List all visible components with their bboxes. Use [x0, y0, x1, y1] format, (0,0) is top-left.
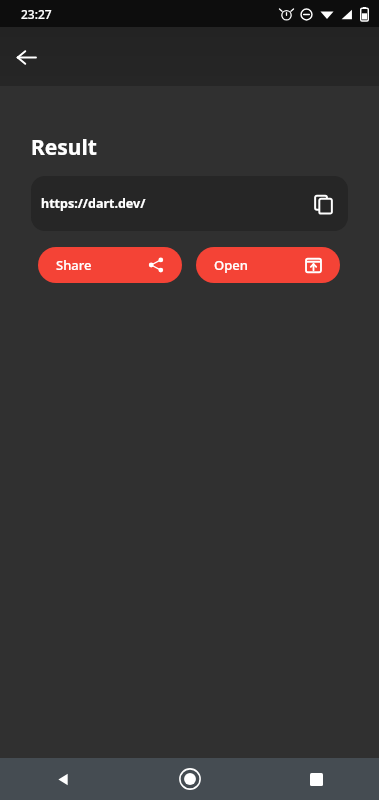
button[interactable]: Back	[0, 758, 127, 800]
staticText: Result	[31, 133, 97, 162]
button[interactable]: Back	[6, 37, 46, 77]
staticText: https://dart.dev/	[41, 195, 146, 212]
button[interactable]: Copy	[306, 187, 340, 221]
staticText: Share	[56, 256, 92, 274]
button[interactable]: https://dart.dev/	[31, 176, 348, 231]
button[interactable]: Home	[127, 758, 253, 800]
staticText: Open	[214, 256, 248, 274]
staticText: 23:27	[21, 6, 52, 22]
button[interactable]: Open	[196, 247, 340, 283]
button[interactable]: Share	[38, 247, 182, 283]
button[interactable]: Recent apps	[253, 758, 379, 800]
